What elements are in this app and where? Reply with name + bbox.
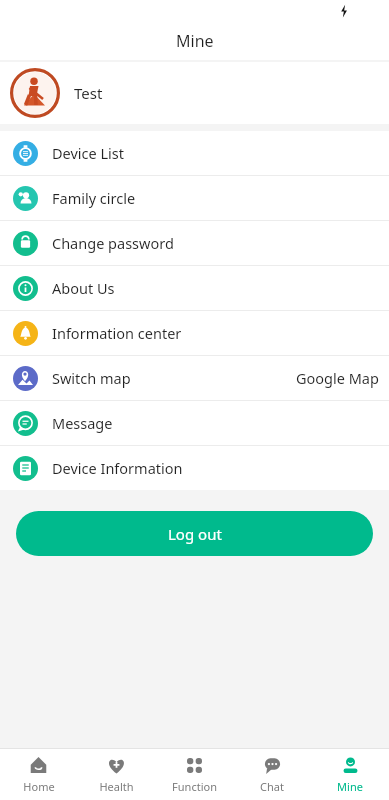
staticText: Mine [176, 30, 214, 52]
button[interactable]: Information center [0, 311, 389, 355]
button[interactable]: About Us [0, 266, 389, 310]
button[interactable]: Mine [311, 749, 389, 800]
button[interactable]: Device List [0, 131, 389, 175]
button[interactable]: Function [155, 749, 233, 800]
staticText: Message [52, 413, 113, 433]
staticText: Test [74, 83, 103, 103]
button[interactable]: Switch map [0, 356, 389, 400]
button[interactable]: Change password [0, 221, 389, 265]
staticText: Function [172, 779, 217, 794]
staticText: Information center [52, 323, 182, 343]
staticText: Home [23, 779, 55, 794]
staticText: About Us [52, 278, 115, 298]
staticText: Google Map [296, 368, 379, 388]
button[interactable]: Device Information [0, 446, 389, 490]
staticText: Change password [52, 233, 174, 253]
staticText: Switch map [52, 368, 131, 388]
staticText: Family circle [52, 188, 136, 208]
staticText: Device Information [52, 458, 183, 478]
button[interactable]: Home [0, 749, 77, 800]
button[interactable]: Test [0, 62, 389, 124]
staticText: Health [99, 779, 134, 794]
staticText: Mine [337, 779, 363, 794]
staticText: Log out [168, 524, 222, 544]
button[interactable]: Log out [16, 511, 373, 556]
staticText: Device List [52, 143, 125, 163]
button[interactable]: Health [77, 749, 155, 800]
button[interactable]: Chat [233, 749, 311, 800]
staticText: Chat [260, 779, 284, 794]
button[interactable]: Message [0, 401, 389, 445]
button[interactable]: Family circle [0, 176, 389, 220]
